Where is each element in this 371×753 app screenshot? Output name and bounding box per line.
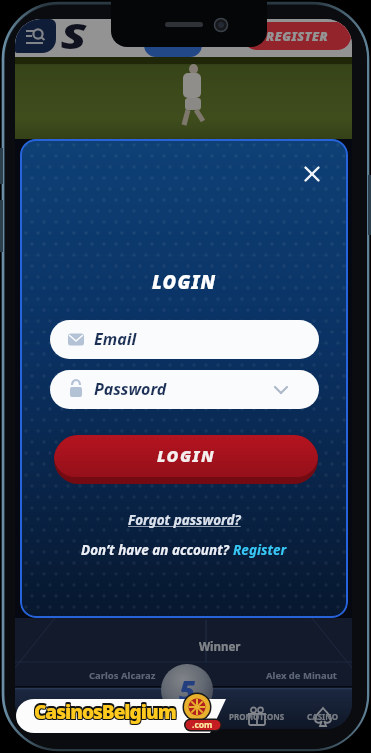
staticText: CasinosBelgium — [34, 700, 176, 726]
button[interactable]: CASINO — [283, 711, 352, 729]
staticText: CasinosBelgium — [34, 697, 176, 723]
staticText: CasinosBelgium — [35, 700, 177, 726]
staticText: LOGIN — [157, 445, 216, 467]
staticText: CasinosBelgium — [35, 699, 177, 725]
button[interactable]: LOGIN — [54, 435, 318, 484]
staticText: REGISTER — [266, 28, 329, 45]
staticText: CasinosBelgium — [35, 697, 177, 723]
staticText: Winner — [199, 639, 241, 655]
button[interactable]: PROMOTIONS — [217, 711, 297, 729]
staticText: Email — [94, 328, 137, 350]
button[interactable] — [144, 33, 202, 57]
staticText: PROMOTIONS — [229, 711, 285, 722]
staticText: CasinosBelgium — [33, 697, 175, 723]
staticText: Carlos Alcaraz — [89, 669, 156, 682]
staticText: 5 — [179, 671, 196, 709]
button[interactable] — [300, 162, 324, 186]
staticText: .com — [192, 719, 213, 731]
staticText: LOGIN — [152, 269, 217, 294]
staticText: CASINO — [307, 711, 339, 722]
button[interactable] — [15, 19, 56, 53]
button[interactable]: Forgot password? — [20, 511, 348, 529]
button[interactable]: Register — [233, 541, 287, 559]
button[interactable]: Password — [50, 370, 319, 409]
staticText: Forgot password? — [128, 511, 241, 529]
staticText: Password — [94, 378, 167, 400]
staticText: CasinosBelgium — [34, 699, 176, 725]
button[interactable]: 5 — [161, 664, 213, 716]
staticText: S — [60, 19, 87, 60]
staticText: CasinosBelgium — [33, 699, 175, 725]
button[interactable]: REGISTER — [243, 22, 351, 50]
button[interactable]: Email — [50, 320, 319, 359]
staticText: Alex de Minaut — [266, 669, 337, 682]
staticText: CasinosBelgium — [33, 700, 175, 726]
staticText: Don’t have an account? — [81, 541, 233, 559]
